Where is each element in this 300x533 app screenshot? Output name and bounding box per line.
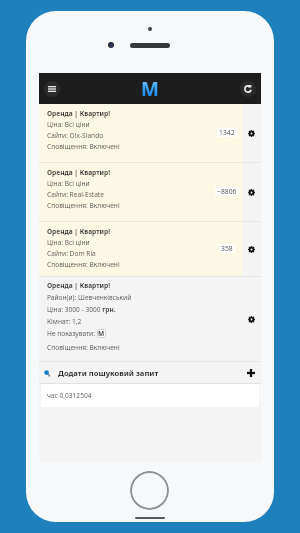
- button[interactable]: Refresh: [240, 81, 256, 97]
- staticText: Сайти: Olx-Slando: [47, 131, 104, 140]
- staticText: Оренда | Квартир!: [47, 281, 111, 290]
- staticText: M: [141, 76, 159, 102]
- staticText: Сайти: Real-Estate: [47, 190, 104, 199]
- staticText: Додати пошуковий запит: [58, 368, 159, 378]
- staticText: Оренда | Квартир!: [47, 109, 111, 118]
- button[interactable]: Settings: [242, 277, 261, 361]
- button[interactable]: Оренда | Квартир!: [39, 104, 261, 162]
- staticText: M: [98, 329, 105, 338]
- button[interactable]: Settings: [242, 163, 261, 221]
- button[interactable]: Menu: [44, 81, 60, 97]
- button[interactable]: Settings: [242, 104, 261, 162]
- staticText: Сповіщення: Включені: [47, 201, 120, 210]
- staticText: Сповіщення: Включені: [47, 142, 120, 151]
- staticText: Не показувати:: [47, 329, 97, 338]
- staticText: Оренда | Квартир!: [47, 168, 111, 177]
- staticText: Ціна: 3000 - 3000 грн.: [47, 305, 116, 314]
- staticText: Район(и): Шевченківський: [47, 293, 132, 302]
- staticText: Сповіщення: Включені: [47, 343, 120, 352]
- staticText: Сповіщення: Включені: [47, 260, 120, 269]
- button[interactable]: Додати пошуковий запит: [39, 362, 261, 383]
- staticText: Ціна: Всі ціни: [47, 120, 90, 129]
- staticText: 1342: [219, 128, 235, 137]
- button[interactable]: Add: [241, 363, 260, 382]
- button[interactable]: Settings: [242, 222, 261, 276]
- staticText: 358: [221, 244, 233, 253]
- button[interactable]: Оренда | Квартир!: [39, 277, 261, 361]
- staticText: Сайти: Dom Ria: [47, 249, 96, 258]
- staticText: Оренда | Квартир!: [47, 227, 111, 236]
- staticText: Ціна: Всі ціни: [47, 238, 90, 247]
- staticText: час 0,0312504: [47, 391, 92, 400]
- staticText: Кімнат: 1,2: [47, 317, 82, 326]
- button[interactable]: Оренда | Квартир!: [39, 163, 261, 221]
- button[interactable]: Оренда | Квартир!: [39, 222, 261, 276]
- staticText: Ціна: Всі ціни: [47, 179, 90, 188]
- staticText: ~8806: [217, 187, 237, 196]
